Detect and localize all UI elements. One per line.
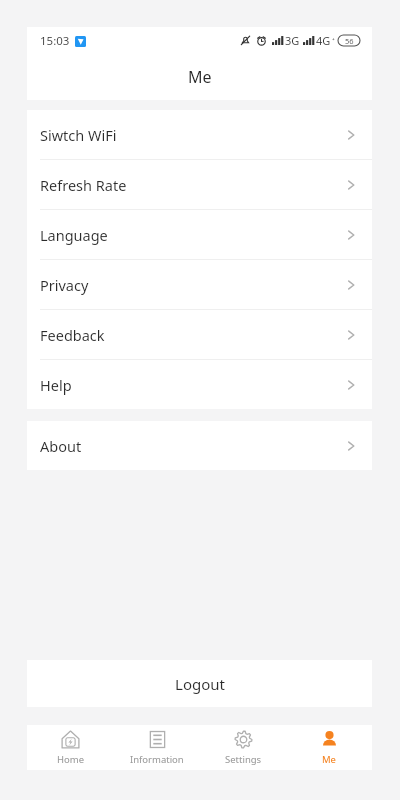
button[interactable]: Settings	[200, 725, 286, 770]
button[interactable]: Me	[286, 725, 372, 770]
staticText: About	[40, 436, 82, 456]
button[interactable]: Feedback	[27, 310, 372, 359]
button[interactable]: Home	[27, 725, 114, 770]
staticText: 15:03	[40, 33, 70, 49]
staticText: Language	[40, 225, 108, 245]
staticText: Information	[130, 753, 184, 766]
staticText: Help	[40, 375, 72, 395]
button[interactable]: Help	[27, 360, 372, 409]
staticText: 56	[345, 36, 354, 46]
staticText: Siwtch WiFi	[40, 125, 117, 145]
staticText: Settings	[225, 753, 262, 766]
staticText: 4G	[316, 33, 331, 48]
staticText: Refresh Rate	[40, 175, 127, 195]
button[interactable]: Language	[27, 210, 372, 259]
staticText: Privacy	[40, 275, 89, 295]
button[interactable]: About	[27, 421, 372, 470]
button[interactable]: Information	[114, 725, 200, 770]
button[interactable]: Privacy	[27, 260, 372, 309]
staticText: Me	[188, 66, 212, 88]
staticText: ⁺	[332, 35, 335, 46]
staticText: Home	[57, 753, 85, 766]
staticText: Me	[322, 753, 336, 766]
button[interactable]: Logout	[27, 660, 372, 707]
staticText: Logout	[175, 674, 225, 694]
button[interactable]: Siwtch WiFi	[27, 110, 372, 159]
staticText: Feedback	[40, 325, 105, 345]
button[interactable]: Refresh Rate	[27, 160, 372, 209]
staticText: 3G	[285, 33, 300, 48]
